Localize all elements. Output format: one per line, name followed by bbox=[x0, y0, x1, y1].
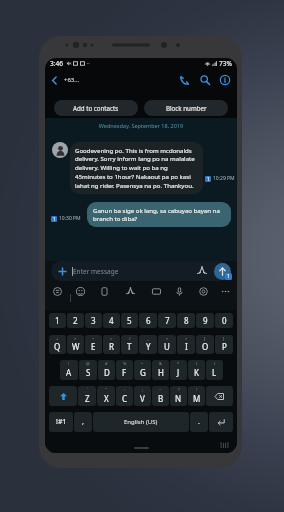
button[interactable]: ! bbox=[60, 360, 78, 380]
button[interactable]: Emoji bbox=[73, 284, 87, 298]
staticText: ' bbox=[87, 387, 88, 392]
staticText: ) bbox=[214, 361, 216, 366]
button[interactable]: Details bbox=[215, 70, 235, 90]
staticText: @ bbox=[86, 361, 90, 366]
button[interactable]: % bbox=[116, 360, 133, 380]
button[interactable]: Search bbox=[195, 70, 215, 90]
staticText: 0 bbox=[222, 315, 227, 326]
button[interactable]: 7 bbox=[158, 313, 176, 328]
staticText: V bbox=[140, 393, 145, 404]
button[interactable]: [ bbox=[196, 335, 214, 354]
button[interactable]: 3 bbox=[85, 313, 102, 328]
button[interactable]: Send bbox=[214, 263, 231, 280]
button[interactable]: Apps bbox=[194, 263, 210, 279]
staticText: ! bbox=[196, 387, 198, 392]
button[interactable]: Back bbox=[45, 71, 63, 89]
staticText: O bbox=[202, 341, 209, 352]
button[interactable]: Add to contacts bbox=[54, 100, 138, 116]
button[interactable]: 1 bbox=[49, 313, 66, 328]
staticText: _ bbox=[147, 336, 149, 341]
button[interactable]: Enter bbox=[209, 412, 233, 432]
staticText: ^ bbox=[141, 361, 144, 366]
staticText: & bbox=[159, 361, 162, 366]
button[interactable]: 4 bbox=[103, 313, 120, 328]
button[interactable]: . bbox=[190, 412, 208, 432]
button[interactable]: ^ bbox=[134, 360, 151, 380]
button[interactable]: _ bbox=[139, 335, 157, 354]
button[interactable]: Voice bbox=[172, 284, 186, 298]
button[interactable]: ] bbox=[215, 335, 233, 354]
staticText: N bbox=[175, 393, 182, 404]
staticText: > bbox=[185, 336, 188, 341]
button[interactable]: @ bbox=[79, 360, 97, 380]
button[interactable]: ! bbox=[188, 386, 205, 406]
button[interactable]: ) bbox=[206, 360, 223, 380]
button[interactable]: English (US) bbox=[93, 412, 189, 432]
button[interactable]: GIF bbox=[149, 284, 163, 298]
button[interactable]: Gallery bbox=[97, 284, 111, 298]
staticText: 10:30 PM bbox=[59, 215, 81, 222]
staticText: 3:46 bbox=[50, 59, 63, 68]
button[interactable]: 9 bbox=[196, 313, 214, 328]
button[interactable]: ? bbox=[170, 386, 187, 406]
staticText: 1 bbox=[55, 315, 60, 326]
staticText: ! bbox=[68, 361, 70, 366]
button[interactable]: ( bbox=[188, 360, 205, 380]
staticText: Goodevening po. This is from mcdonalds d… bbox=[75, 146, 198, 190]
staticText: F bbox=[122, 367, 127, 378]
button[interactable]: Apps bbox=[123, 284, 137, 298]
staticText: Y bbox=[146, 341, 151, 352]
staticText: × bbox=[74, 336, 77, 341]
staticText: ] bbox=[223, 336, 225, 341]
staticText: Ganun ba sige ok lang, sa cabuyao bayan … bbox=[93, 206, 225, 223]
button[interactable]: = bbox=[103, 335, 120, 354]
button[interactable]: × bbox=[67, 335, 84, 354]
staticText: C bbox=[122, 393, 128, 404]
staticText: ~ bbox=[159, 387, 162, 392]
button[interactable]: ; bbox=[134, 386, 151, 406]
button[interactable]: 6 bbox=[139, 313, 157, 328]
button[interactable]: > bbox=[177, 335, 195, 354]
button[interactable]: + bbox=[49, 335, 66, 354]
button[interactable]: " bbox=[97, 386, 115, 406]
staticText: A bbox=[66, 367, 72, 378]
staticText: / bbox=[129, 336, 131, 341]
button[interactable]: !#1 bbox=[49, 412, 73, 432]
button[interactable]: & bbox=[152, 360, 169, 380]
button[interactable]: More bbox=[218, 284, 232, 298]
staticText: 9 bbox=[203, 315, 208, 326]
staticText: Block number bbox=[166, 104, 207, 112]
button[interactable]: Stickers bbox=[50, 284, 64, 298]
button[interactable]: Call bbox=[175, 70, 195, 90]
staticText: E bbox=[91, 341, 96, 352]
button[interactable]: # bbox=[98, 360, 115, 380]
staticText: ÷ bbox=[92, 336, 95, 341]
button[interactable]: Enter message bbox=[51, 261, 230, 281]
staticText: 1 bbox=[207, 176, 210, 182]
staticText: " bbox=[105, 387, 107, 392]
button[interactable]: 2 bbox=[67, 313, 84, 328]
button[interactable]: / bbox=[121, 335, 138, 354]
button[interactable]: Shift bbox=[49, 386, 77, 406]
button[interactable]: 8 bbox=[177, 313, 195, 328]
button[interactable]: ~ bbox=[152, 386, 169, 406]
button[interactable]: , bbox=[74, 412, 92, 432]
button[interactable]: 5 bbox=[121, 313, 138, 328]
button[interactable]: : bbox=[116, 386, 133, 406]
staticText: Wednesday, September 18, 2019 bbox=[45, 122, 237, 129]
button[interactable]: ' bbox=[78, 386, 96, 406]
button[interactable]: Backspace bbox=[206, 386, 233, 406]
button[interactable]: * bbox=[170, 360, 187, 380]
staticText: ·· bbox=[87, 60, 90, 67]
staticText: , bbox=[82, 417, 84, 427]
button[interactable]: ÷ bbox=[85, 335, 102, 354]
button[interactable]: 0 bbox=[215, 313, 233, 328]
button[interactable]: < bbox=[158, 335, 176, 354]
button[interactable]: Block number bbox=[144, 100, 228, 116]
button[interactable]: Settings bbox=[196, 284, 210, 298]
staticText: < bbox=[166, 336, 169, 341]
staticText: [ bbox=[204, 336, 206, 341]
staticText: 1 bbox=[227, 273, 230, 280]
staticText: ; bbox=[142, 387, 144, 392]
staticText: U bbox=[164, 341, 170, 352]
